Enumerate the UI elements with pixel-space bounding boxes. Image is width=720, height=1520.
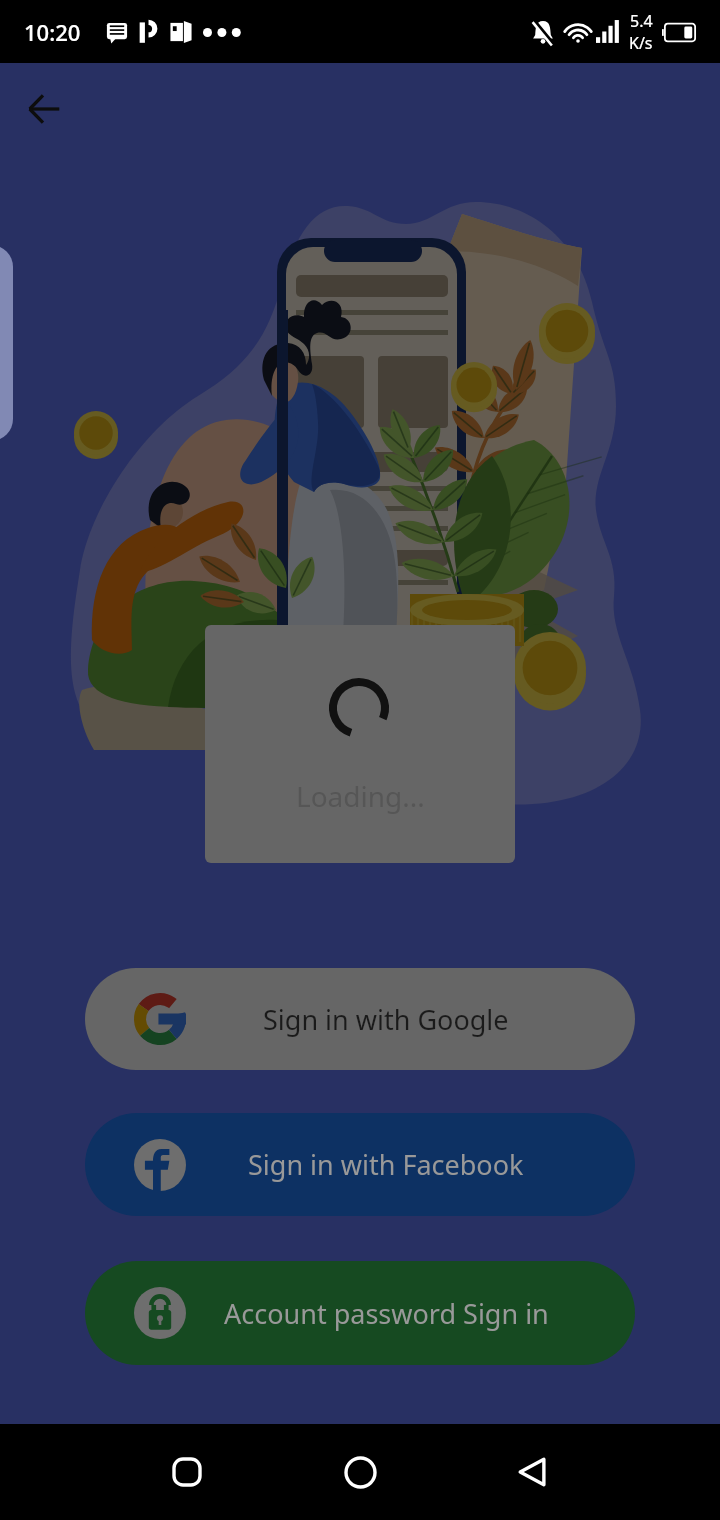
button[interactable]: Account password Sign in bbox=[85, 1261, 635, 1365]
button[interactable]: Back bbox=[497, 1436, 569, 1508]
button[interactable]: Recent apps bbox=[151, 1436, 223, 1508]
staticText: K/s bbox=[629, 32, 653, 54]
staticText: 10:20 bbox=[24, 17, 81, 47]
staticText: 5.4 bbox=[630, 10, 653, 32]
staticText: Sign in with Google bbox=[263, 1001, 509, 1038]
staticText: Account password Sign in bbox=[224, 1295, 549, 1332]
button[interactable]: Sign in with Facebook bbox=[85, 1113, 635, 1216]
button[interactable]: Home bbox=[324, 1436, 396, 1508]
staticText: Loading... bbox=[296, 777, 425, 815]
staticText: Sign in with Facebook bbox=[248, 1146, 524, 1183]
button[interactable]: Sign in with Google bbox=[85, 968, 635, 1070]
button[interactable]: Back bbox=[12, 77, 76, 141]
